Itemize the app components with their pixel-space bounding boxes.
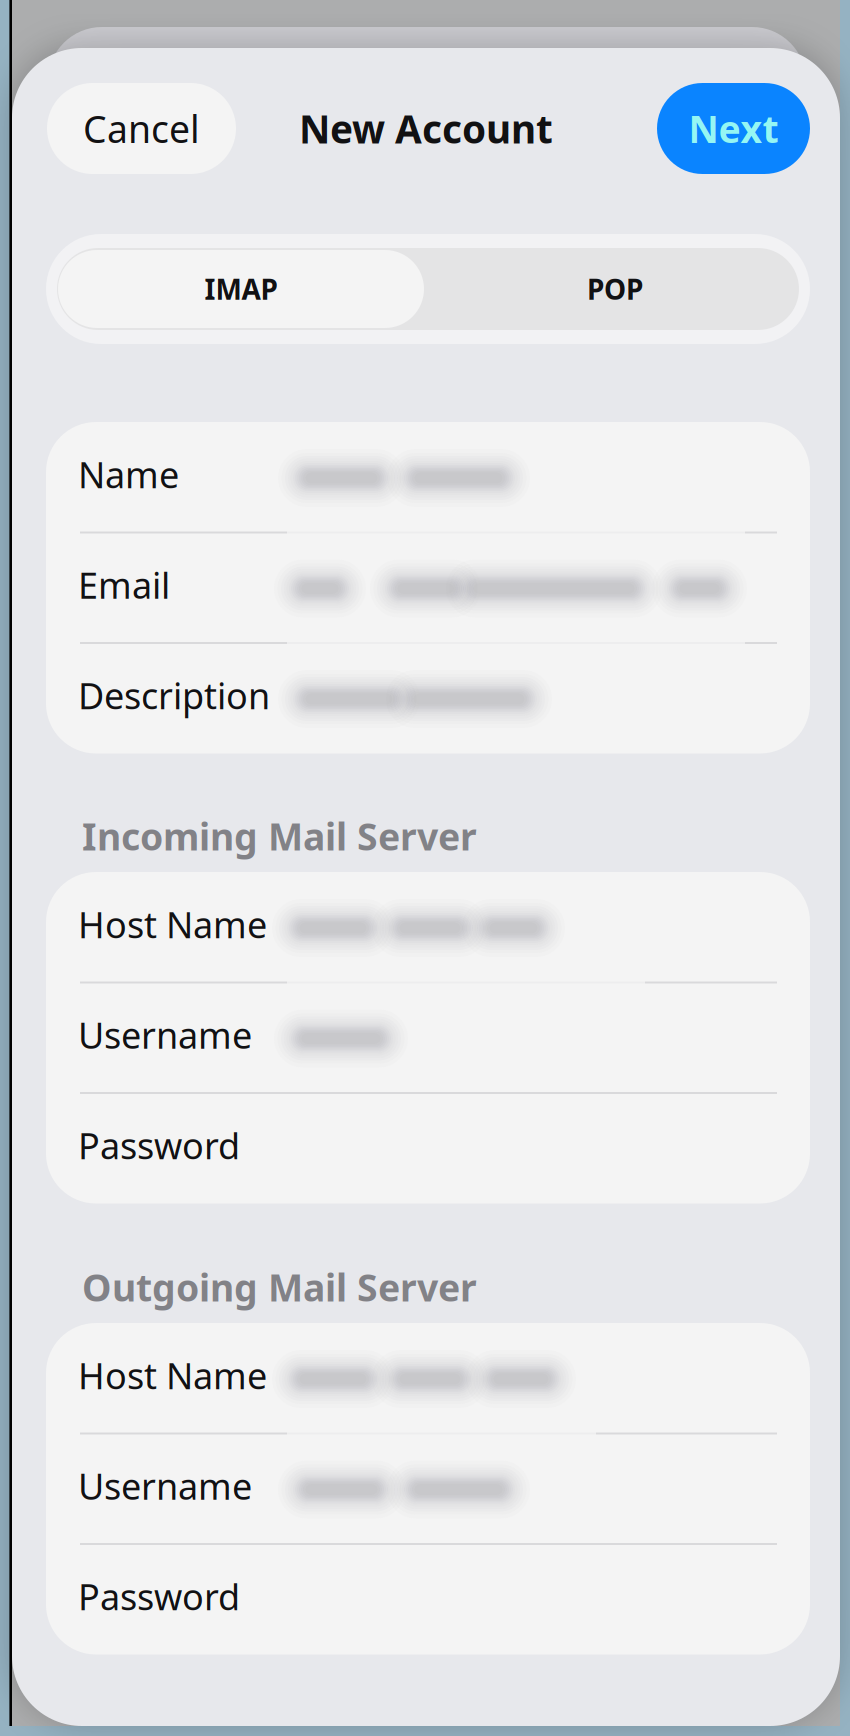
staticText: POP <box>587 270 643 308</box>
button[interactable]: Description <box>46 643 810 753</box>
button[interactable]: Username <box>46 1433 810 1544</box>
button[interactable]: Username <box>46 982 810 1093</box>
staticText: Email <box>78 561 170 609</box>
button[interactable]: POP <box>432 250 798 328</box>
staticText: Username <box>78 1011 252 1059</box>
button[interactable]: Cancel <box>47 83 236 174</box>
staticText: Name <box>78 450 179 498</box>
button[interactable]: Password <box>46 1093 810 1203</box>
staticText: Description <box>78 671 270 719</box>
button[interactable]: Next <box>657 83 810 174</box>
staticText: IMAP <box>204 270 277 308</box>
staticText: Username <box>78 1462 252 1510</box>
button[interactable]: Host Name <box>46 872 810 982</box>
button[interactable]: Host Name <box>46 1323 810 1433</box>
staticText: Cancel <box>83 104 200 153</box>
button[interactable]: Email <box>46 532 810 643</box>
staticText: Incoming Mail Server <box>82 811 477 861</box>
button[interactable]: Name <box>46 422 810 532</box>
staticText: New Account <box>299 103 553 154</box>
staticText: Host Name <box>78 900 267 948</box>
button[interactable]: Password <box>46 1544 810 1654</box>
staticText: Next <box>688 104 778 153</box>
staticText: Password <box>78 1572 240 1620</box>
staticText: Password <box>78 1121 240 1169</box>
staticText: Outgoing Mail Server <box>82 1262 477 1312</box>
button[interactable]: IMAP <box>58 250 424 328</box>
staticText: Host Name <box>78 1351 267 1399</box>
